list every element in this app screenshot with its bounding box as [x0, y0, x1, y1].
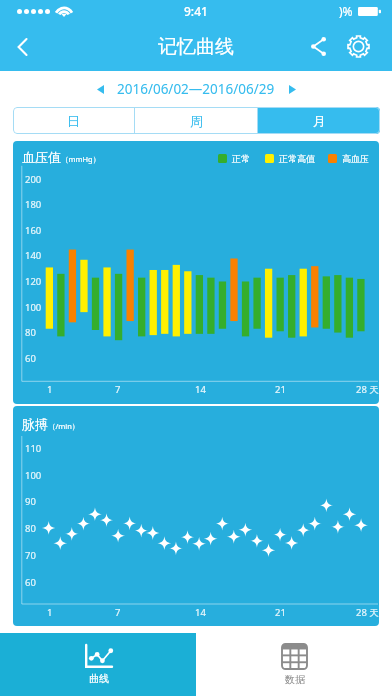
staticText: 80	[25, 326, 36, 339]
staticText: 血压值	[22, 149, 61, 165]
staticText: 140	[25, 249, 42, 262]
staticText: 80	[25, 522, 36, 535]
button[interactable]: 数据	[196, 633, 392, 696]
button[interactable]: Settings	[338, 22, 378, 71]
button[interactable]: 周	[135, 107, 257, 134]
button[interactable]: 月	[258, 107, 380, 134]
staticText: 记忆曲线	[158, 35, 234, 59]
staticText: 1	[47, 383, 53, 396]
staticText: 120	[25, 275, 42, 288]
button[interactable]: 曲线	[0, 633, 196, 696]
staticText: 周	[190, 113, 203, 129]
staticText: 日	[67, 113, 80, 129]
staticText: 正常高值	[279, 153, 315, 164]
staticText: 60	[25, 576, 36, 589]
button[interactable]: 日	[13, 107, 134, 134]
staticText: 14	[195, 606, 206, 619]
staticText: （/min）	[48, 421, 80, 431]
staticText: 月	[313, 113, 326, 129]
staticText: )%	[339, 3, 353, 19]
staticText: 数据	[285, 673, 305, 686]
staticText: 高血压	[342, 153, 369, 164]
staticText: 110	[25, 442, 42, 455]
button[interactable]: Back	[0, 22, 46, 71]
staticText: 60	[25, 352, 36, 365]
staticText: 7	[115, 606, 121, 619]
staticText: 2016/06/02—2016/06/29	[117, 80, 275, 98]
staticText: 脉搏	[22, 416, 48, 432]
staticText: 曲线	[89, 672, 109, 685]
staticText: 14	[195, 383, 206, 396]
staticText: 21	[275, 383, 286, 396]
staticText: 21	[275, 606, 286, 619]
staticText: 70	[25, 549, 36, 562]
staticText: 7	[115, 383, 121, 396]
staticText: 100	[25, 301, 42, 314]
staticText: 100	[25, 469, 42, 482]
staticText: 28 天	[356, 606, 379, 619]
button[interactable]: Next period	[280, 77, 304, 101]
staticText: 9:41	[184, 3, 208, 19]
button[interactable]: Share	[298, 22, 338, 71]
staticText: 200	[25, 173, 42, 186]
staticText: 1	[47, 606, 53, 619]
button[interactable]: Previous period	[88, 77, 112, 101]
staticText: 28 天	[356, 383, 379, 396]
staticText: 160	[25, 224, 42, 237]
staticText: 90	[25, 495, 36, 508]
staticText: 180	[25, 198, 42, 211]
staticText: （mmHg）	[61, 154, 101, 164]
staticText: 正常	[232, 153, 250, 164]
